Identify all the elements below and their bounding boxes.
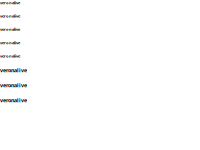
staticText: veronalive [0, 82, 27, 89]
staticText: veronalive [0, 27, 20, 32]
staticText: veronalive [0, 40, 20, 45]
staticText: veronalive [0, 13, 20, 19]
staticText: veronalive [0, 97, 27, 104]
staticText: veronalive [0, 53, 20, 58]
staticText: veronalive [0, 0, 20, 5]
staticText: veronalive [0, 67, 27, 74]
